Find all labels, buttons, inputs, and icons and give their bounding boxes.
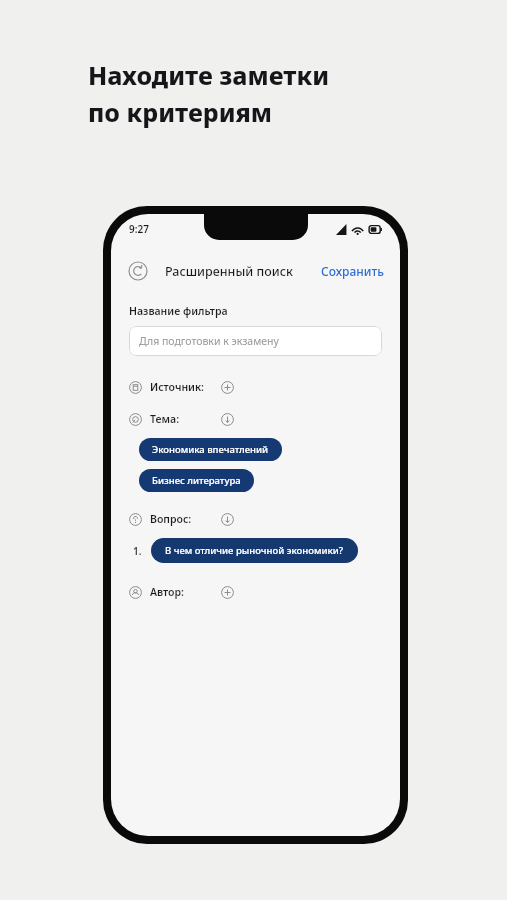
staticText: Сохранить xyxy=(321,263,384,279)
staticText: Для подготовки к экзамену xyxy=(139,334,279,348)
staticText: Вопрос: xyxy=(150,512,192,526)
button[interactable]: Экономика впечатлений xyxy=(139,438,282,461)
button[interactable]: Сбросить xyxy=(125,258,151,284)
staticText: 9:27 xyxy=(129,222,149,236)
button[interactable]: Бизнес литература xyxy=(139,469,254,492)
staticText: 1. xyxy=(133,544,142,558)
button[interactable]: Автор: xyxy=(129,583,400,601)
button[interactable]: В чем отличие рыночной экономики? xyxy=(151,538,358,563)
staticText: Экономика впечатлений xyxy=(152,443,269,456)
button[interactable]: Сохранить xyxy=(319,261,386,281)
staticText: по критериям xyxy=(88,95,273,129)
staticText: Автор: xyxy=(150,585,184,599)
staticText: В чем отличие рыночной экономики? xyxy=(165,544,344,557)
button[interactable]: Добавить Источник: xyxy=(218,378,236,396)
button[interactable]: Тема: xyxy=(129,410,400,428)
staticText: Тема: xyxy=(150,412,180,426)
staticText: Источник: xyxy=(150,380,205,394)
button[interactable]: Добавить Автор: xyxy=(218,583,236,601)
button[interactable]: Свернуть Вопрос: xyxy=(218,510,236,528)
staticText: Расширенный поиск xyxy=(165,263,293,280)
button[interactable]: Для подготовки к экзамену xyxy=(129,326,382,356)
staticText: Название фильтра xyxy=(129,304,228,318)
button[interactable]: Вопрос: xyxy=(129,510,400,528)
staticText: Бизнес литература xyxy=(152,474,241,487)
staticText: Находите заметки xyxy=(88,58,330,92)
button[interactable]: Свернуть Тема: xyxy=(218,410,236,428)
button[interactable]: Источник: xyxy=(129,378,400,396)
